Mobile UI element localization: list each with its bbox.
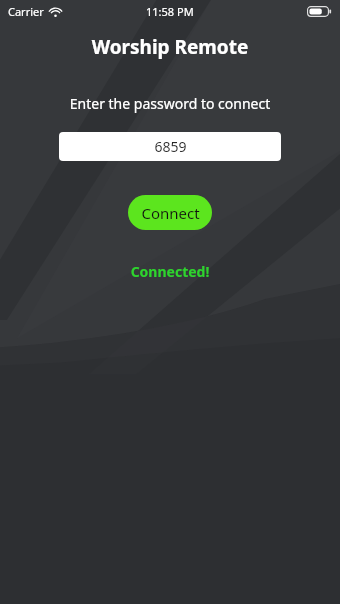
staticText: Worship Remote	[0, 34, 340, 60]
staticText: Connected!	[0, 262, 340, 281]
button[interactable]: 6859	[59, 132, 281, 161]
staticText: Carrier	[8, 4, 44, 19]
staticText: 6859	[154, 137, 187, 156]
staticText: 11:58 PM	[146, 4, 194, 19]
staticText: Connect	[141, 203, 200, 223]
button[interactable]: Connect	[128, 195, 212, 230]
staticText: Enter the password to connect	[0, 94, 340, 113]
